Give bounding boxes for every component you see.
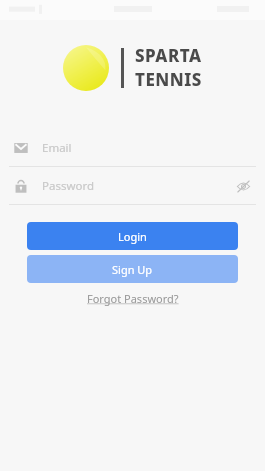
- button[interactable]: Toggle password visibility: [233, 176, 253, 196]
- other: Password: [13, 178, 29, 194]
- button[interactable]: Sign Up: [27, 255, 238, 283]
- button[interactable]: Password: [0, 167, 265, 204]
- button[interactable]: Login: [27, 222, 238, 250]
- staticText: Password: [42, 178, 233, 194]
- other: Email: [13, 140, 29, 156]
- staticText: SPARTA: [135, 44, 202, 67]
- staticText: Forgot Password?: [87, 291, 179, 306]
- staticText: TENNIS: [135, 68, 202, 91]
- button[interactable]: Forgot Password?: [81, 289, 185, 308]
- staticText: Email: [42, 140, 253, 156]
- button[interactable]: Email: [0, 129, 265, 166]
- staticText: Sign Up: [112, 262, 153, 277]
- staticText: Login: [118, 229, 147, 244]
